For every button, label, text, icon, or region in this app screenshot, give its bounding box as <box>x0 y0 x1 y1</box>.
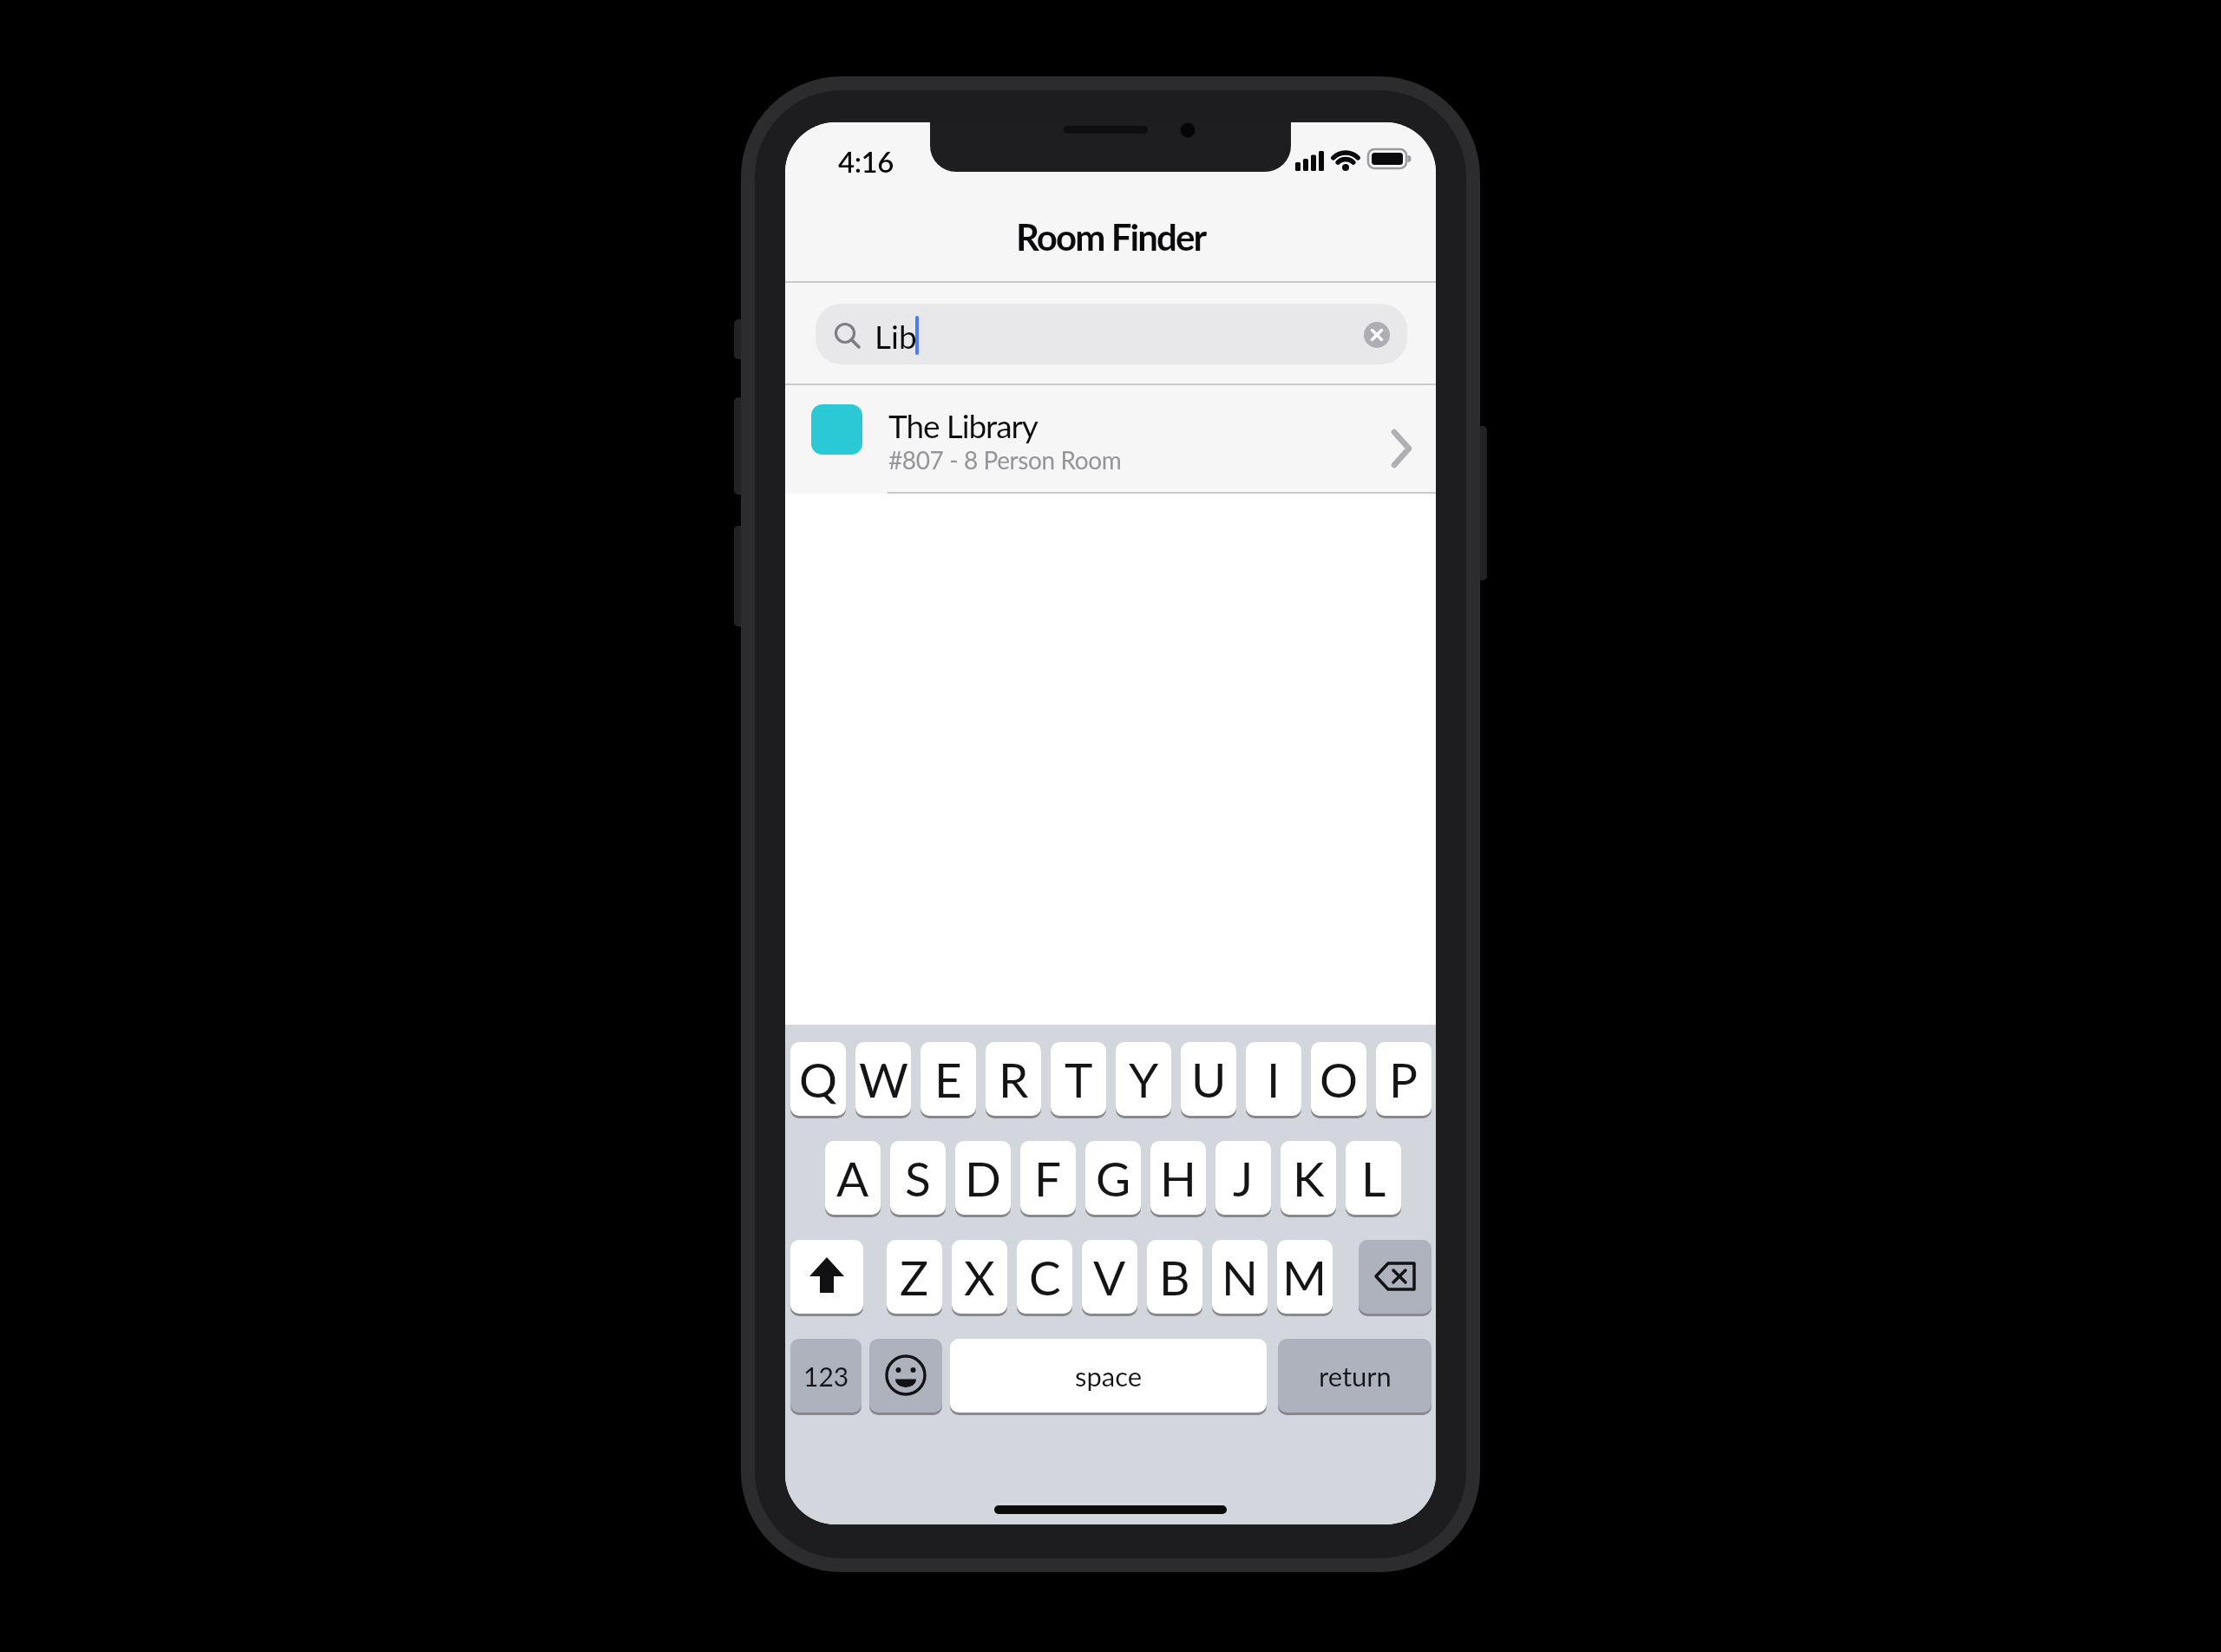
staticText: S <box>905 1150 931 1207</box>
button[interactable] <box>785 385 1436 492</box>
button[interactable]: F <box>1020 1141 1076 1215</box>
staticText: W <box>859 1051 908 1108</box>
staticText: G <box>1096 1150 1131 1207</box>
staticText: B <box>1159 1249 1190 1306</box>
staticText: C <box>1029 1249 1061 1306</box>
button[interactable]: Y <box>1116 1042 1171 1116</box>
button[interactable]: R <box>986 1042 1041 1116</box>
staticText: 4:16 <box>838 144 894 179</box>
button[interactable]: return <box>1278 1339 1432 1413</box>
staticText: M <box>1282 1249 1327 1306</box>
staticText: V <box>1093 1249 1126 1306</box>
button[interactable]: A <box>825 1141 881 1215</box>
staticText: L <box>1361 1150 1386 1207</box>
button[interactable] <box>816 304 1407 364</box>
staticText: Q <box>799 1051 838 1108</box>
staticText: J <box>1233 1150 1254 1207</box>
button[interactable] <box>790 1240 863 1314</box>
staticText: 123 <box>803 1360 849 1392</box>
staticText: K <box>1293 1150 1325 1207</box>
staticText: T <box>1065 1051 1093 1108</box>
button[interactable]: D <box>955 1141 1011 1215</box>
button[interactable]: M <box>1277 1240 1333 1314</box>
button[interactable]: E <box>921 1042 976 1116</box>
staticText: Lib <box>875 317 917 355</box>
staticText: A <box>836 1150 869 1207</box>
button[interactable] <box>1359 1240 1432 1314</box>
button[interactable]: P <box>1376 1042 1432 1116</box>
button[interactable]: 123 <box>790 1339 862 1413</box>
button[interactable]: O <box>1311 1042 1366 1116</box>
button[interactable]: Q <box>790 1042 846 1116</box>
button[interactable]: H <box>1150 1141 1206 1215</box>
button[interactable]: I <box>1246 1042 1301 1116</box>
staticText: Room Finder <box>1016 215 1206 259</box>
staticText: N <box>1222 1249 1258 1306</box>
staticText: H <box>1160 1150 1196 1207</box>
staticText: O <box>1320 1051 1359 1108</box>
button[interactable] <box>869 1339 942 1413</box>
button[interactable]: J <box>1215 1141 1271 1215</box>
button[interactable]: W <box>855 1042 911 1116</box>
button[interactable]: C <box>1017 1240 1072 1314</box>
staticText: return <box>1319 1360 1392 1392</box>
button[interactable]: G <box>1085 1141 1141 1215</box>
staticText: space <box>1075 1360 1143 1392</box>
button[interactable]: U <box>1181 1042 1236 1116</box>
button[interactable]: K <box>1281 1141 1336 1215</box>
staticText: The Library <box>888 406 1038 444</box>
staticText: P <box>1389 1051 1418 1108</box>
button[interactable]: Z <box>887 1240 942 1314</box>
staticText: D <box>965 1150 1001 1207</box>
button[interactable]: space <box>950 1339 1267 1413</box>
button[interactable]: N <box>1212 1240 1268 1314</box>
button[interactable]: S <box>890 1141 946 1215</box>
button[interactable]: T <box>1051 1042 1106 1116</box>
button[interactable]: L <box>1346 1141 1401 1215</box>
button[interactable]: X <box>952 1240 1007 1314</box>
staticText: #807 - 8 Person Room <box>888 445 1122 475</box>
staticText: F <box>1034 1150 1062 1207</box>
staticText: E <box>934 1051 962 1108</box>
button[interactable] <box>1360 318 1393 351</box>
staticText: R <box>999 1051 1029 1108</box>
staticText: X <box>964 1249 995 1306</box>
button[interactable]: B <box>1147 1240 1202 1314</box>
staticText: U <box>1191 1051 1227 1108</box>
staticText: Y <box>1129 1051 1159 1108</box>
staticText: Z <box>900 1249 929 1306</box>
button[interactable]: V <box>1082 1240 1137 1314</box>
staticText: I <box>1267 1051 1281 1108</box>
